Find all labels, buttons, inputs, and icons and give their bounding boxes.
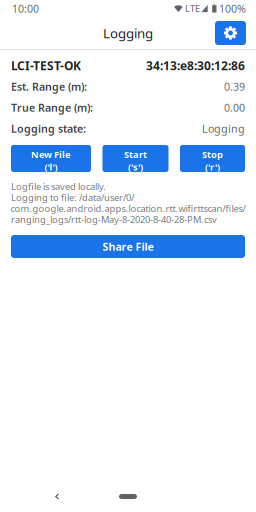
staticText: Logfile is saved locally. <box>11 180 106 193</box>
staticText: 0.00 <box>224 100 245 115</box>
staticText: 100% <box>219 1 246 16</box>
staticText: Logging to file: /data/user/0/ <box>11 191 134 204</box>
staticText: Start <box>124 148 147 161</box>
button[interactable]: Settings <box>215 21 246 45</box>
button[interactable]: Back <box>46 484 68 508</box>
staticText: Stop <box>202 148 223 161</box>
staticText: Est. Range (m): <box>11 79 87 94</box>
staticText: com.google.android.apps.location.rtt.wif… <box>10 202 245 215</box>
staticText: Logging <box>103 24 153 42</box>
staticText: LTE <box>185 2 200 15</box>
staticText: Logging state: <box>11 121 86 136</box>
staticText: Share File <box>102 239 153 254</box>
staticText: ranging_logs/rtt-log-May-8-2020-8-40-28-… <box>11 213 217 226</box>
staticText: 34:13:e8:30:12:86 <box>146 57 245 73</box>
staticText: 0.39 <box>224 79 245 94</box>
staticText: New File <box>31 148 71 161</box>
staticText: ('l') <box>44 161 57 173</box>
staticText: LCI-TEST-OK <box>11 57 81 73</box>
staticText: ('s') <box>128 161 143 173</box>
button[interactable]: Stop <box>180 145 245 172</box>
button[interactable]: Share File <box>11 235 245 258</box>
staticText: 10:00 <box>12 1 39 16</box>
button[interactable]: Start <box>102 145 168 172</box>
staticText: Logging <box>202 121 245 136</box>
button[interactable]: New File <box>11 145 91 172</box>
staticText: True Range (m): <box>11 100 93 115</box>
staticText: ('r') <box>205 161 220 173</box>
